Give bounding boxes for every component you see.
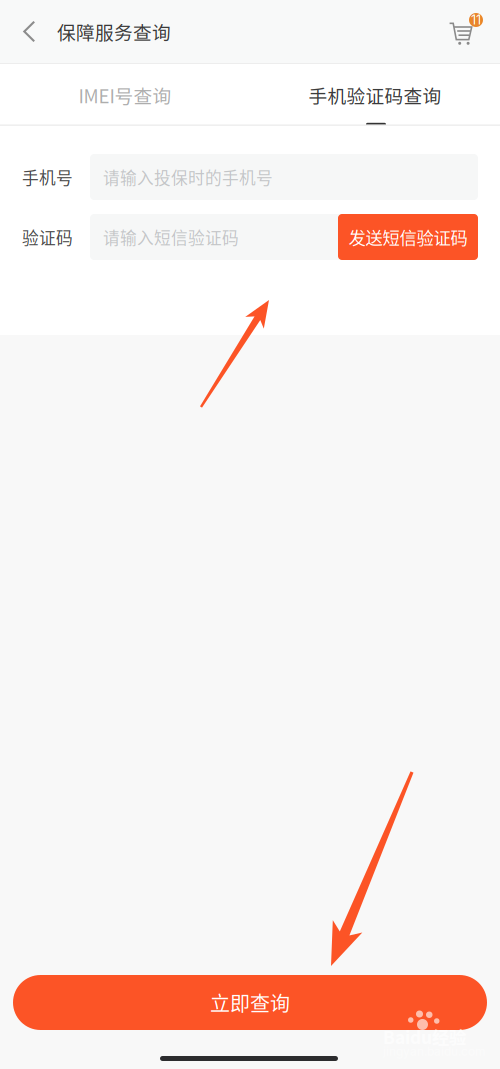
button[interactable]: Shopping cart, 11 items: [439, 0, 493, 63]
button[interactable]: 立即查询: [13, 975, 487, 1030]
staticText: 请输入投保时的手机号: [103, 165, 273, 189]
button[interactable]: 请输入投保时的手机号: [90, 154, 478, 200]
staticText: 请输入短信验证码: [103, 225, 239, 249]
button[interactable]: IMEI号查询: [0, 64, 250, 126]
staticText: 保障服务查询: [57, 18, 171, 45]
staticText: 11: [471, 12, 481, 28]
staticText: IMEI号查询: [78, 81, 171, 108]
button[interactable]: 发送短信验证码: [338, 214, 478, 260]
button[interactable]: 请输入短信验证码: [90, 214, 478, 260]
staticText: 发送短信验证码: [348, 224, 467, 250]
staticText: 立即查询: [210, 988, 290, 1017]
staticText: 验证码: [22, 225, 73, 249]
staticText: 手机号: [22, 165, 73, 189]
staticText: Baidu经验: [383, 1024, 466, 1049]
button[interactable]: Back: [0, 0, 46, 63]
button[interactable]: 手机验证码查询: [250, 64, 500, 126]
staticText: 手机验证码查询: [308, 81, 441, 108]
